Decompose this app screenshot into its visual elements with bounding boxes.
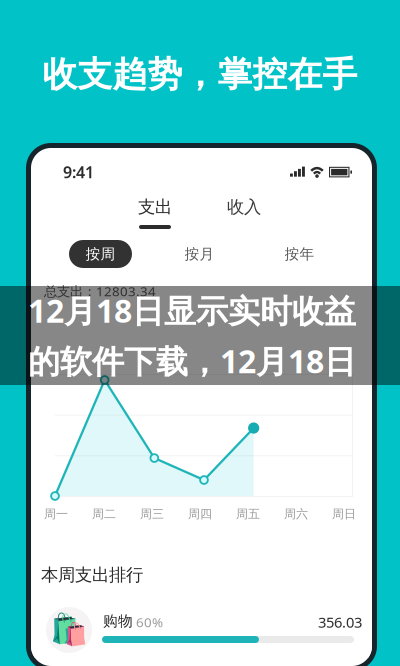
staticText: 购物 xyxy=(103,612,133,630)
staticText: 按周 xyxy=(85,245,115,263)
staticText: 周二 xyxy=(92,507,116,521)
staticText: 的软件下载，12月18日 xyxy=(28,339,356,382)
staticText: 12月18日显示实时收益 xyxy=(28,289,356,331)
button[interactable]: 收入 xyxy=(209,198,279,216)
staticText: 按年 xyxy=(284,245,314,263)
button[interactable]: 🛍️ xyxy=(31,606,372,658)
staticText: 按月 xyxy=(184,245,214,263)
staticText: 9:41 xyxy=(63,161,94,183)
staticText: 周三 xyxy=(140,507,164,521)
staticText: 周日 xyxy=(332,507,356,521)
staticText: 收入 xyxy=(227,196,261,218)
staticText: 周六 xyxy=(284,507,308,521)
button[interactable]: 按年 xyxy=(268,240,331,268)
staticText: 本周支出排行 xyxy=(41,564,143,586)
button[interactable]: 支出 xyxy=(120,198,190,229)
staticText: 收支趋势，掌控在手 xyxy=(42,53,357,96)
staticText: 356.03 xyxy=(318,612,362,632)
button[interactable]: 按周 xyxy=(69,240,132,268)
staticText: 60% xyxy=(136,613,163,631)
staticText: 🛍️ xyxy=(50,612,88,648)
staticText: 支出 xyxy=(138,196,172,218)
staticText: 周一 xyxy=(44,507,68,521)
staticText: 周五 xyxy=(236,507,260,521)
staticText: 周四 xyxy=(188,507,212,521)
staticText: 总支出：12803.34 xyxy=(44,282,156,300)
button[interactable]: 按月 xyxy=(168,240,231,268)
